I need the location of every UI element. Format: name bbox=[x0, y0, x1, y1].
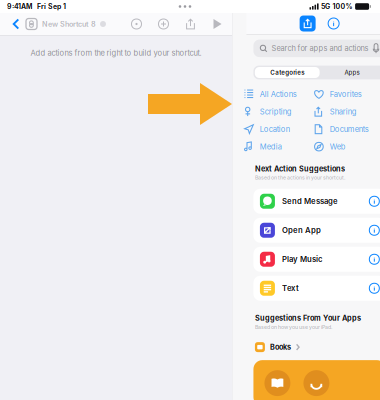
staticText: Web bbox=[330, 142, 346, 151]
staticText: Documents bbox=[330, 125, 369, 134]
staticText: Send Message bbox=[282, 197, 338, 206]
button[interactable]: Documents bbox=[314, 120, 375, 138]
button[interactable]: Text bbox=[253, 276, 380, 301]
button[interactable]: Multitasking controls bbox=[173, 2, 197, 11]
button[interactable]: Play Music bbox=[253, 247, 380, 272]
button[interactable]: Media bbox=[244, 138, 314, 155]
button[interactable]: Open App bbox=[253, 218, 380, 243]
button[interactable]: Scripting bbox=[244, 103, 314, 120]
staticText: 5G bbox=[321, 2, 330, 11]
staticText: Sharing bbox=[330, 107, 357, 116]
button[interactable]: Web bbox=[314, 138, 375, 155]
button[interactable]: Add action bbox=[150, 13, 177, 35]
button[interactable]: Location bbox=[244, 120, 314, 138]
button[interactable]: Categories bbox=[255, 67, 320, 78]
staticText: Favorites bbox=[330, 90, 362, 99]
staticText: Location bbox=[260, 125, 290, 134]
staticText: Based on the actions in your shortcut. bbox=[255, 175, 345, 181]
button[interactable]: Apps bbox=[320, 67, 380, 78]
button[interactable]: Run bbox=[204, 13, 231, 35]
button[interactable]: Favorites bbox=[314, 85, 375, 103]
staticText: Categories bbox=[270, 69, 304, 76]
staticText: Text bbox=[282, 284, 299, 293]
staticText: Next Action Suggestions bbox=[255, 164, 345, 173]
staticText: Media bbox=[260, 142, 282, 151]
staticText: 100% bbox=[333, 2, 353, 11]
staticText: Open App bbox=[282, 226, 321, 235]
staticText: Search for apps and actions bbox=[271, 44, 368, 53]
button[interactable]: All Actions bbox=[244, 85, 314, 103]
staticText: Suggestions From Your Apps bbox=[255, 314, 361, 322]
staticText: Scripting bbox=[260, 107, 292, 116]
button[interactable]: Shortcut details bbox=[123, 13, 150, 35]
staticText: Apps bbox=[344, 69, 359, 76]
staticText: New Shortcut 8 bbox=[42, 20, 96, 28]
button[interactable]: Sharing bbox=[314, 103, 375, 120]
button[interactable]: Share shortcut bbox=[299, 14, 317, 32]
staticText: Add actions from the right to build your… bbox=[30, 49, 201, 58]
staticText: All Actions bbox=[260, 90, 297, 99]
staticText: Books bbox=[270, 343, 291, 351]
staticText: Play Music bbox=[282, 255, 323, 264]
button[interactable]: Back bbox=[6, 13, 26, 35]
button[interactable]: Books bbox=[246, 340, 380, 354]
button[interactable]: Send Message bbox=[253, 189, 380, 214]
staticText: Based on how you use your iPad. bbox=[255, 324, 332, 330]
button[interactable]: Share bbox=[177, 13, 204, 35]
staticText: 9:41AM bbox=[7, 2, 32, 11]
button[interactable]: Info bbox=[326, 15, 342, 31]
staticText: Fri Sep 1 bbox=[37, 2, 66, 11]
